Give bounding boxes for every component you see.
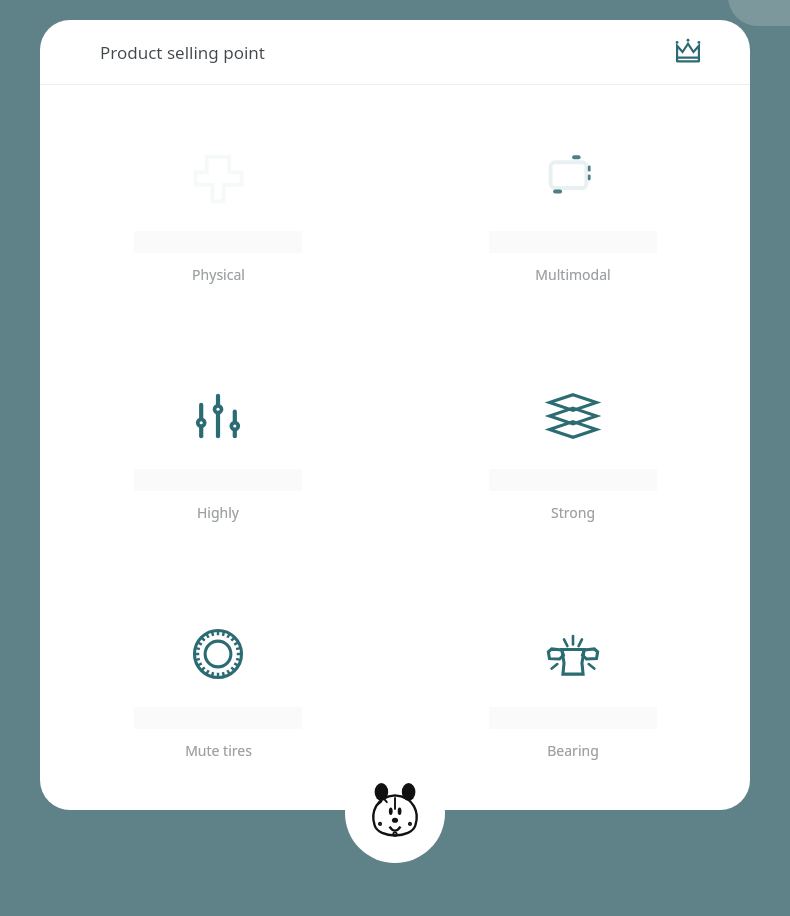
button[interactable]: Strong [473,385,673,522]
staticText: Product selling point [100,41,265,64]
staticText: Multimodal [535,265,611,284]
staticText: Mute tires [185,741,252,760]
button[interactable]: Mute tires [118,623,318,760]
staticText: Physical [192,265,245,284]
staticText: Strong [551,503,595,522]
button[interactable]: Highly [118,385,318,522]
button[interactable]: Physical [118,147,318,284]
button[interactable]: Bearing [473,623,673,760]
staticText: Bearing [547,741,599,760]
button[interactable]: Brand mascot [345,763,445,863]
button[interactable]: Premium [670,34,706,70]
button[interactable]: Multimodal [473,147,673,284]
staticText: Highly [197,503,239,522]
